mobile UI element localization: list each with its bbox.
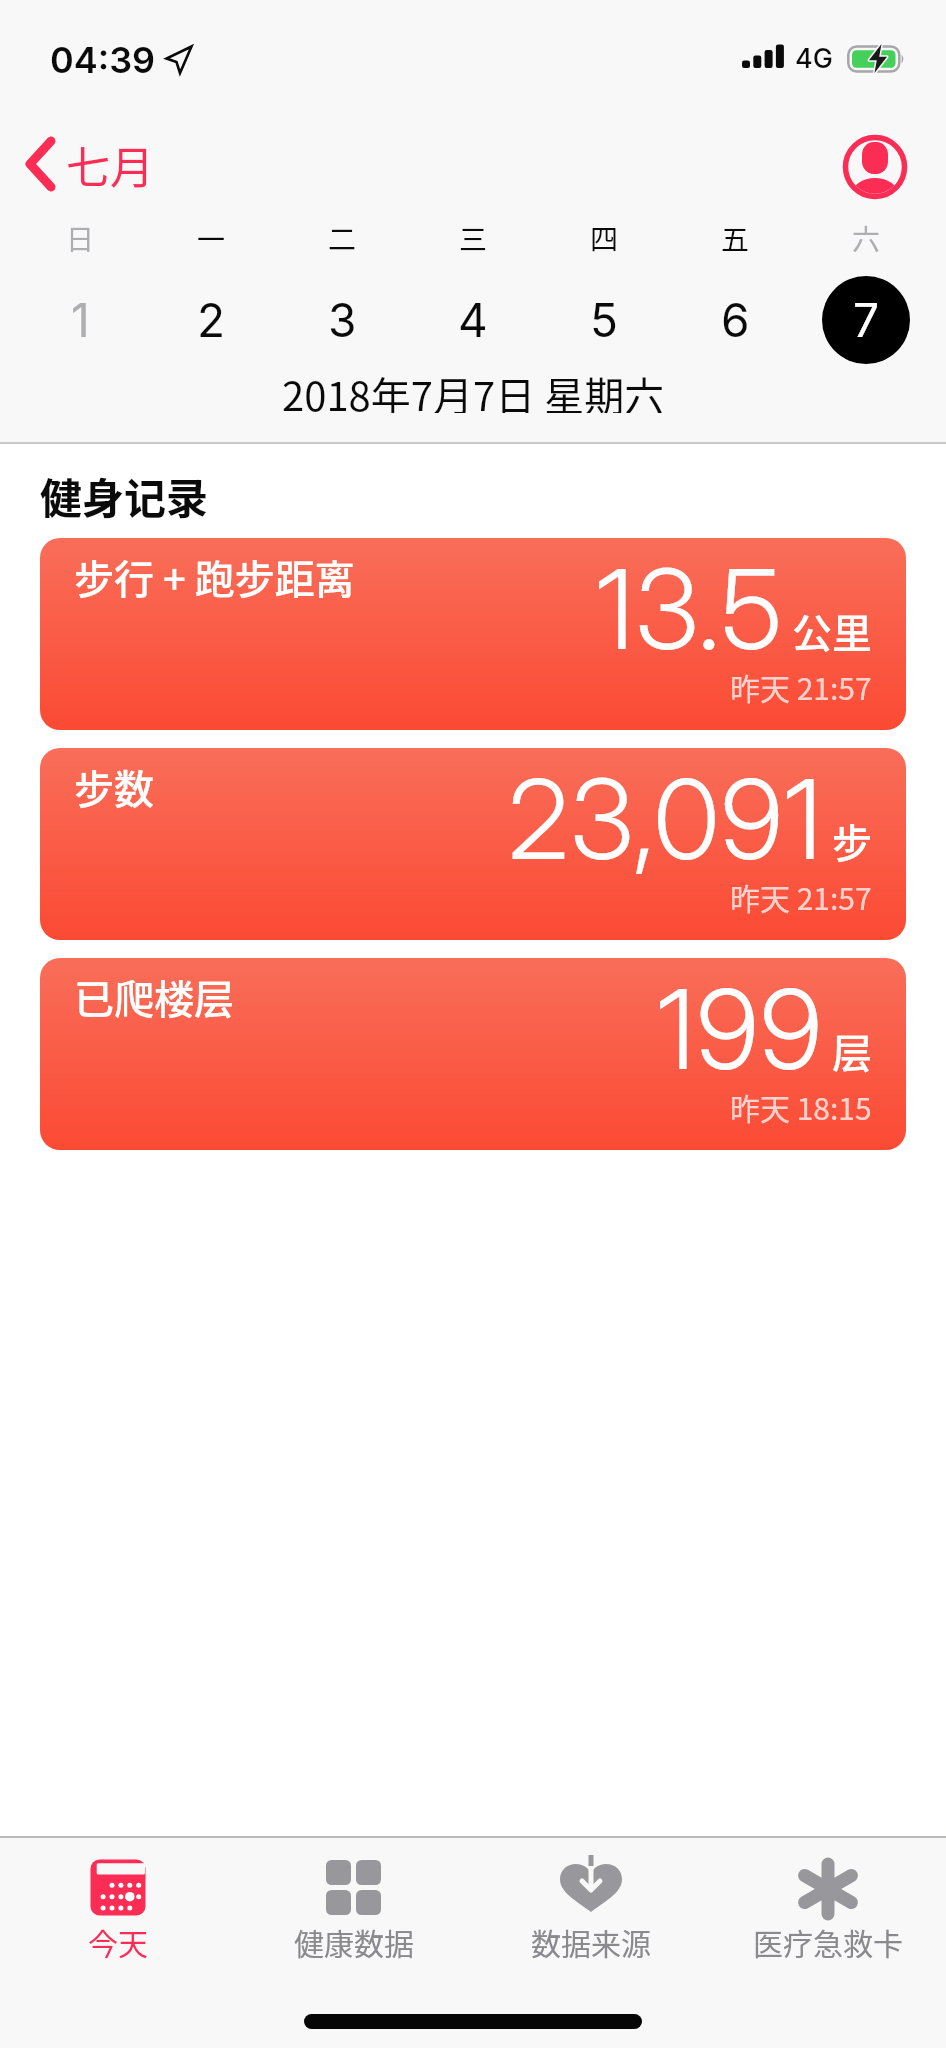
staticText: 199 bbox=[657, 962, 824, 1095]
staticText: 13.5 bbox=[596, 542, 784, 675]
staticText: 23,091 bbox=[508, 752, 824, 885]
staticText: 医疗急救卡 bbox=[753, 1920, 903, 1963]
staticText: 昨天 21:57 bbox=[730, 875, 872, 918]
staticText: 一 bbox=[197, 218, 226, 258]
button[interactable]: 7 bbox=[801, 291, 931, 349]
staticText: 5 bbox=[590, 292, 618, 348]
button[interactable]: 6 bbox=[670, 291, 800, 349]
staticText: 二 bbox=[328, 218, 357, 258]
staticText: 七月 bbox=[66, 133, 154, 197]
staticText: 昨天 18:15 bbox=[730, 1085, 872, 1128]
staticText: 日 bbox=[66, 218, 95, 258]
staticText: 四 bbox=[590, 218, 619, 258]
button[interactable]: 1 bbox=[15, 291, 145, 349]
button[interactable] bbox=[842, 134, 908, 200]
button[interactable]: 步数 bbox=[40, 748, 906, 940]
staticText: 04:39 bbox=[50, 38, 156, 82]
staticText: 7 bbox=[853, 292, 880, 348]
staticText: 1 bbox=[71, 292, 90, 348]
button[interactable]: 3 bbox=[277, 291, 407, 349]
button[interactable]: 数据来源 bbox=[472, 1838, 709, 1963]
staticText: 3 bbox=[328, 292, 357, 348]
button[interactable]: 2 bbox=[146, 291, 276, 349]
staticText: 6 bbox=[721, 292, 750, 348]
staticText: 4G bbox=[795, 42, 833, 75]
button[interactable]: 5 bbox=[539, 291, 669, 349]
staticText: 已爬楼层 bbox=[74, 968, 234, 1026]
button[interactable]: 健康数据 bbox=[236, 1838, 472, 1963]
staticText: 层 bbox=[832, 1022, 872, 1080]
staticText: 健身记录 bbox=[40, 465, 209, 526]
button[interactable]: 七月 bbox=[14, 128, 164, 200]
staticText: 三 bbox=[459, 218, 488, 258]
button[interactable]: 今天 bbox=[0, 1838, 236, 1963]
staticText: 2 bbox=[197, 292, 226, 348]
staticText: 五 bbox=[721, 218, 750, 258]
staticText: 步数 bbox=[74, 758, 154, 816]
staticText: 步行 + 跑步距离 bbox=[74, 548, 355, 606]
staticText: 今天 bbox=[88, 1920, 148, 1963]
staticText: 数据来源 bbox=[531, 1920, 651, 1963]
staticText: 健康数据 bbox=[294, 1920, 414, 1963]
staticText: 昨天 21:57 bbox=[730, 665, 872, 708]
staticText: 步 bbox=[832, 812, 872, 870]
staticText: 2018年7月7日 星期六 bbox=[282, 365, 665, 413]
staticText: 4 bbox=[458, 292, 488, 348]
button[interactable]: 步行 + 跑步距离 bbox=[40, 538, 906, 730]
staticText: 公里 bbox=[792, 602, 872, 660]
button[interactable]: 已爬楼层 bbox=[40, 958, 906, 1150]
button[interactable]: 医疗急救卡 bbox=[709, 1838, 946, 1963]
staticText: 六 bbox=[852, 218, 881, 258]
button[interactable]: 4 bbox=[408, 291, 538, 349]
